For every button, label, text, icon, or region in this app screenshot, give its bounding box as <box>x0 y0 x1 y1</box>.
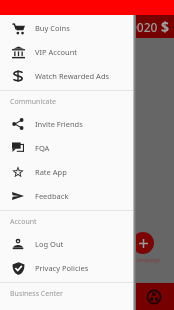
staticText: Feedback <box>35 191 69 201</box>
button[interactable]: VIP Account <box>0 40 133 64</box>
staticText: Log Out <box>35 239 64 249</box>
staticText: $ <box>161 17 170 36</box>
staticText: Invite Friends <box>35 119 83 129</box>
staticText: Campaign <box>134 256 161 263</box>
button[interactable]: More options <box>147 290 161 304</box>
staticText: Account <box>10 217 37 227</box>
staticText: Communicate <box>10 97 56 107</box>
staticText: 0020 <box>130 19 158 35</box>
staticText: Privacy Policies <box>35 263 89 273</box>
button[interactable]: Create campaign <box>132 232 154 254</box>
staticText: Watch Rewarded Ads <box>35 71 110 81</box>
staticText: Buy Coins <box>35 23 70 33</box>
button[interactable]: Watch Rewarded Ads <box>0 64 133 88</box>
staticText: Rate App <box>35 167 67 177</box>
button[interactable]: Feedback <box>0 184 133 208</box>
button[interactable]: Buy Coins <box>0 16 133 40</box>
button[interactable]: Invite Friends <box>0 112 133 136</box>
staticText: Business Center <box>10 289 63 299</box>
staticText: VIP Account <box>35 47 78 57</box>
button[interactable]: FQA <box>0 136 133 160</box>
button[interactable]: Log Out <box>0 232 133 256</box>
staticText: FQA <box>35 143 50 153</box>
button[interactable]: Rate App <box>0 160 133 184</box>
button[interactable]: Privacy Policies <box>0 256 133 280</box>
